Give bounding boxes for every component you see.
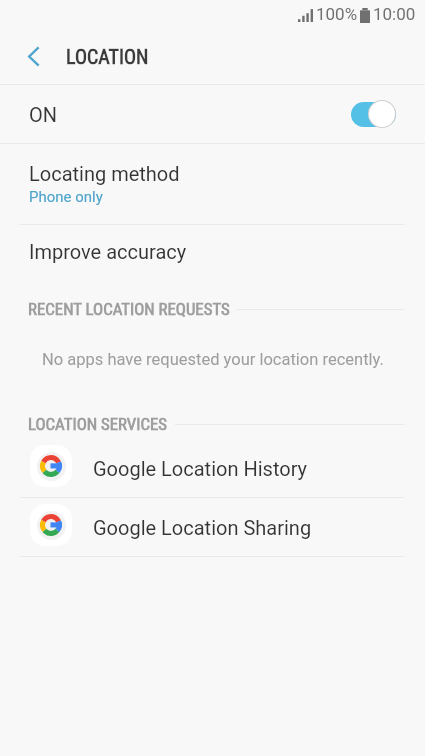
- staticText: Google Location Sharing: [93, 516, 312, 539]
- staticText: LOCATION SERVICES: [28, 414, 168, 434]
- button[interactable]: Google Location Sharing: [0, 498, 425, 556]
- staticText: 100%: [316, 4, 358, 24]
- staticText: 10:00: [373, 4, 416, 24]
- button[interactable]: ON: [0, 85, 425, 143]
- button[interactable]: Navigate up: [0, 28, 59, 84]
- button[interactable]: Improve accuracy: [0, 225, 425, 278]
- staticText: ON: [29, 103, 58, 126]
- staticText: Locating method: [29, 162, 180, 185]
- staticText: LOCATION: [66, 45, 149, 68]
- staticText: Google Location History: [93, 457, 308, 480]
- staticText: Phone only: [29, 188, 103, 206]
- staticText: RECENT LOCATION REQUESTS: [28, 299, 230, 319]
- staticText: Improve accuracy: [29, 240, 187, 263]
- button[interactable]: Google Location History: [0, 439, 425, 497]
- staticText: No apps have requested your location rec…: [42, 350, 384, 369]
- button[interactable]: Location on: [348, 98, 400, 130]
- button[interactable]: Locating method: [0, 144, 425, 224]
